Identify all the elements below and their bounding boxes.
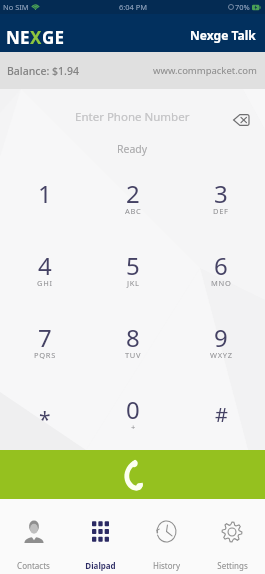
button[interactable]: 1 [0,169,89,241]
staticText: JKL [127,278,140,288]
button[interactable]: Settings [199,499,265,574]
staticText: ABC [125,206,142,216]
button[interactable]: History [133,499,199,574]
staticText: + [131,422,136,432]
staticText: 4 [38,249,52,282]
staticText: 3 [214,177,228,210]
staticText: 9 [214,321,228,354]
staticText: GHI [37,278,53,288]
button[interactable]: 2 [89,169,177,241]
staticText: WXYZ [210,350,233,360]
staticText: History [153,560,180,571]
staticText: 8 [126,321,140,354]
staticText: Contacts [17,560,50,571]
staticText: Settings [217,560,248,571]
button[interactable]: Call [0,450,265,499]
button[interactable]: Dialpad [67,499,133,574]
staticText: 1 [38,177,52,210]
staticText: 2 [126,177,140,210]
staticText: Nexge Talk [190,27,256,43]
button[interactable]: 6 [177,241,265,313]
staticText: www.commpacket.com [153,64,257,77]
staticText: 7 [38,321,52,354]
button[interactable]: * [0,385,89,450]
button[interactable]: 9 [177,313,265,385]
staticText: Dialpad [85,560,116,571]
staticText: 0 [126,393,140,426]
button[interactable]: 3 [177,169,265,241]
staticText: 6 [214,249,228,282]
staticText: X [30,26,42,49]
button[interactable]: # [177,385,265,450]
staticText: NE [6,26,30,49]
staticText: * [39,405,51,434]
staticText: 70% [235,2,250,12]
button[interactable]: 4 [0,241,89,313]
staticText: PQRS [34,350,56,360]
staticText: 5 [126,249,140,282]
button[interactable]: 8 [89,313,177,385]
staticText: MNO [211,278,232,288]
button[interactable]: Backspace [230,109,252,131]
staticText: # [215,401,228,428]
staticText: Enter Phone Number [75,109,190,125]
button[interactable]: Contacts [0,499,67,574]
staticText: DEF [213,206,229,216]
staticText: No SIM [3,2,29,12]
staticText: 6:04 PM [119,2,148,12]
staticText: GE [42,26,65,49]
button[interactable]: 0 [89,385,177,450]
button[interactable]: 7 [0,313,89,385]
staticText: TUV [125,350,142,360]
staticText: Balance: $1.94 [7,64,79,78]
staticText: Ready [117,142,148,156]
button[interactable]: 5 [89,241,177,313]
